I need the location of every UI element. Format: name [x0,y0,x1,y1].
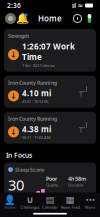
staticText: ↓ [10,91,17,100]
staticText: 30 [8,175,24,195]
staticText: 50:11 · 11:03 AM [22,135,51,140]
staticText: 4.10 mi [22,88,51,98]
button[interactable]: Strength [4,29,96,72]
staticText: ıl [72,1,76,10]
staticText: 🔔 [16,12,29,25]
staticText: ↓ [10,50,17,59]
staticText: ∪ [26,194,34,205]
staticText: ▦ [65,194,74,205]
button[interactable]: ∪ [20,195,40,211]
button[interactable]: Iron County Running [4,112,96,144]
staticText: Home [38,13,62,24]
staticText: 2:36 [7,1,21,10]
staticText: News Feed [60,205,79,210]
staticText: Iron County Running [8,115,57,122]
button[interactable]: Profile [5,13,16,24]
button[interactable]: History [71,12,84,25]
staticText: 👤 [4,194,16,205]
staticText: 41:01 · 10:12:06 [22,99,48,104]
staticText: 4h 58m [68,175,86,182]
button[interactable]: Iron County Running [4,76,96,108]
staticText: Quality [46,182,58,187]
staticText: 1:26:07 Work Time [22,41,75,62]
button[interactable]: ▤ [40,195,60,211]
button[interactable]: Device [84,12,95,25]
button[interactable]: Notifications [16,12,29,25]
staticText: Poor [46,175,57,182]
staticText: Challenges [20,205,39,210]
button[interactable]: ▦ [60,195,80,211]
button[interactable]: ⋯ [80,195,100,211]
staticText: ⋯ [85,194,94,205]
staticText: Home [4,205,15,210]
staticText: ▤ [45,194,54,205]
staticText: More [85,205,95,210]
staticText: ≈ [77,2,83,9]
staticText: Sleep Score [15,166,44,173]
staticText: Iron County Running [8,79,57,86]
staticText: 1 Set · 823 Calories [22,63,55,68]
button[interactable]: Sleep Score [4,162,96,217]
staticText: Strength [8,32,29,40]
button[interactable]: 👤 [0,195,20,211]
staticText: ↓ [10,127,17,136]
staticText: Duration [68,182,83,187]
staticText: 4.38 mi [22,124,51,134]
staticText: In Focus [6,151,32,160]
staticText: Calendar [42,205,58,210]
